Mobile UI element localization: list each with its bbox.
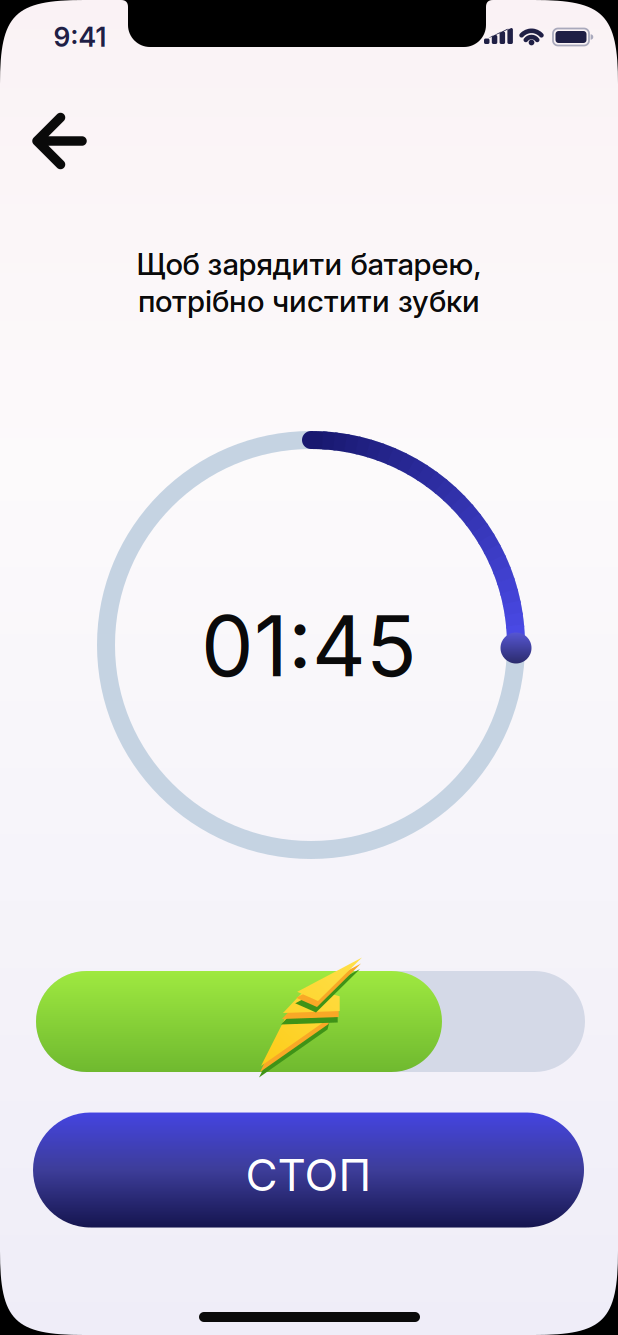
staticText: 01:45 (201, 596, 417, 696)
staticText: 9:41 (53, 21, 106, 53)
staticText: Щоб зарядити батарею, (136, 246, 481, 282)
staticText: потрібно чистити зубки (138, 283, 480, 319)
staticText: СТОП (245, 1148, 371, 1202)
